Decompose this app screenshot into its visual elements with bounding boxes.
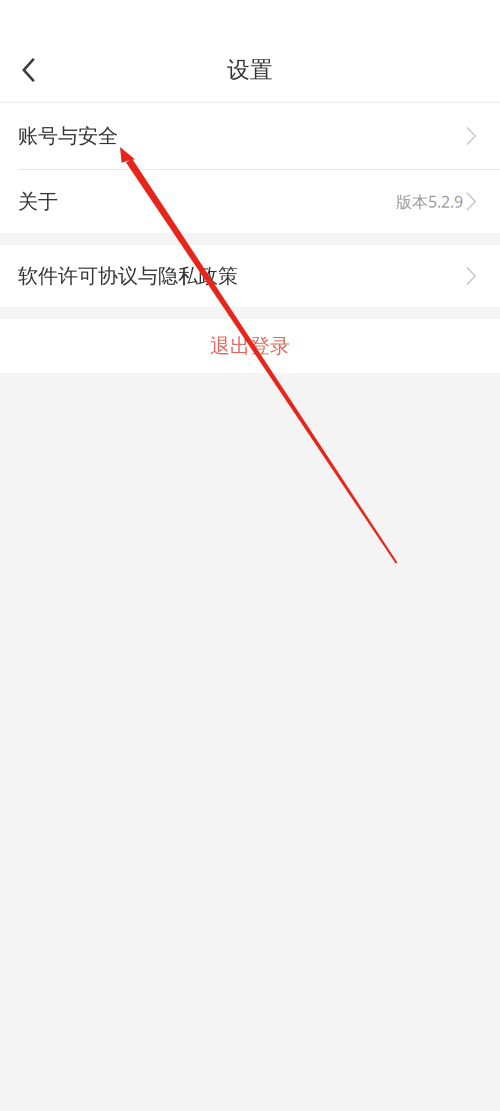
staticText: 版本5.2.9 [396,191,463,212]
staticText: 软件许可协议与隐私政策 [18,264,238,288]
button[interactable]: 返回 [0,38,56,102]
staticText: 退出登录 [210,334,290,358]
button[interactable]: 软件许可协议与隐私政策 [0,245,500,307]
staticText: 关于 [18,189,58,214]
staticText: 账号与安全 [18,124,118,148]
button[interactable]: 账号与安全 [0,103,500,169]
button[interactable]: 关于 [0,170,500,233]
button[interactable]: 退出登录 [0,319,500,373]
staticText: 设置 [227,56,273,84]
